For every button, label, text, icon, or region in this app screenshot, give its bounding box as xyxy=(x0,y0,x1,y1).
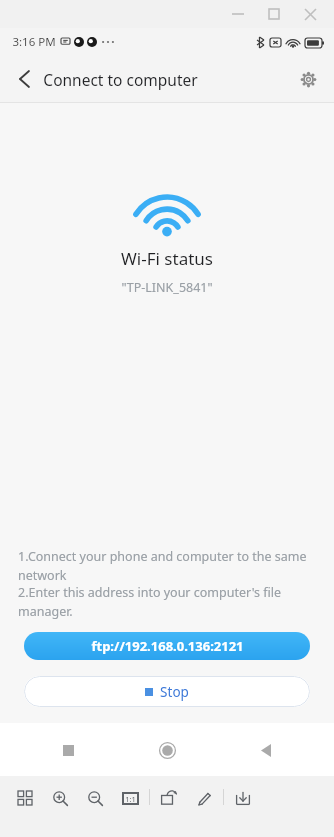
button[interactable]: Rotate xyxy=(156,785,182,811)
button[interactable]: Thumbnails xyxy=(12,785,38,811)
staticText: 2.Enter this address into your computer'… xyxy=(18,584,316,620)
button[interactable]: ftp://192.168.0.136:2121 xyxy=(24,632,310,660)
button[interactable]: Close xyxy=(292,1,328,27)
staticText: "TP-LINK_5841" xyxy=(121,279,213,296)
button[interactable]: Back xyxy=(243,727,289,773)
button[interactable]: Minimize xyxy=(220,1,256,27)
button[interactable]: Edit xyxy=(191,785,217,811)
button[interactable]: Actual size xyxy=(117,785,143,811)
button[interactable]: Zoom in xyxy=(47,785,73,811)
staticText: 1:1 xyxy=(125,794,136,804)
staticText: Connect to computer xyxy=(43,69,198,90)
staticText: Stop xyxy=(160,683,189,701)
button[interactable]: Stop xyxy=(24,676,310,707)
button[interactable]: Home xyxy=(144,727,190,773)
button[interactable]: Back xyxy=(4,59,44,99)
button[interactable]: Recents xyxy=(45,727,91,773)
staticText: Wi-Fi status xyxy=(121,247,213,270)
button[interactable]: Save xyxy=(230,785,256,811)
staticText: ftp://192.168.0.136:2121 xyxy=(91,637,244,655)
staticText: 3:16 PM xyxy=(12,34,56,50)
button[interactable]: Zoom out xyxy=(82,785,108,811)
button[interactable]: Settings xyxy=(288,59,328,99)
staticText: 1.Connect your phone and computer to the… xyxy=(18,548,316,584)
button[interactable]: Maximize xyxy=(256,1,292,27)
